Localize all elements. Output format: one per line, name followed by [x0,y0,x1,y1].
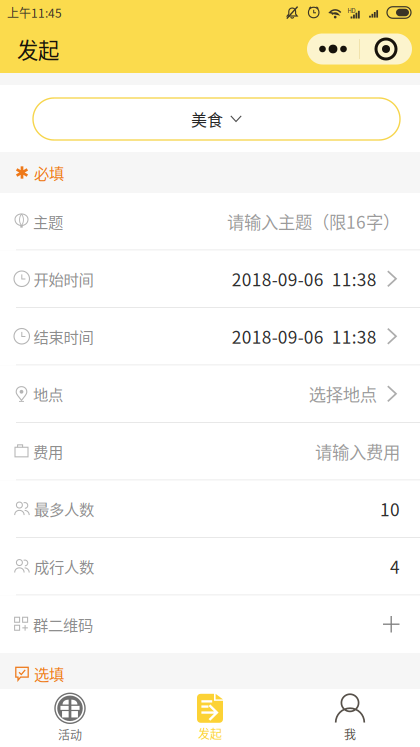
staticText: 请输入费用 [315,439,400,464]
staticText: 选填 [34,662,64,685]
staticText: 我 [344,725,356,743]
button[interactable]: 美食 [0,85,420,152]
staticText: 发起 [198,725,222,742]
staticText: 发起 [17,34,59,64]
staticText: 美食 [191,107,223,131]
staticText: 开始时间 [33,268,93,290]
staticText: 群二维码 [33,613,93,635]
button[interactable]: 发起 [140,689,280,747]
staticText: 4 [390,554,400,579]
button[interactable]: 活动 [0,689,140,747]
staticText: 最多人数 [34,498,94,520]
button[interactable]: 地点 [0,365,420,423]
button[interactable]: 最多人数 [0,480,420,538]
button[interactable]: 成行人数 [0,538,420,595]
staticText: 2018-09-06 11:38 [232,266,377,291]
button[interactable]: 费用 [0,423,420,480]
staticText: 结束时间 [33,325,93,347]
staticText: 10 [380,496,400,521]
button[interactable]: More options [307,33,359,64]
staticText: 2018-09-06 11:38 [232,324,377,349]
staticText: 请输入主题（限16字） [227,209,400,234]
button[interactable]: 主题 [0,193,420,250]
staticText: 选择地点 [309,381,377,406]
staticText: 上午11:45 [7,4,62,21]
button[interactable]: 结束时间 [0,308,420,365]
staticText: 地点 [33,383,63,405]
staticText: 主题 [33,210,63,232]
button[interactable]: 群二维码 [0,595,420,653]
button[interactable]: 我 [280,689,420,747]
staticText: 费用 [33,440,63,462]
button[interactable]: Close mini program [360,33,412,64]
staticText: HD [347,6,355,15]
button[interactable]: 开始时间 [0,250,420,308]
staticText: 必填 [34,161,64,184]
staticText: 活动 [58,726,82,743]
staticText: 成行人数 [34,555,94,577]
